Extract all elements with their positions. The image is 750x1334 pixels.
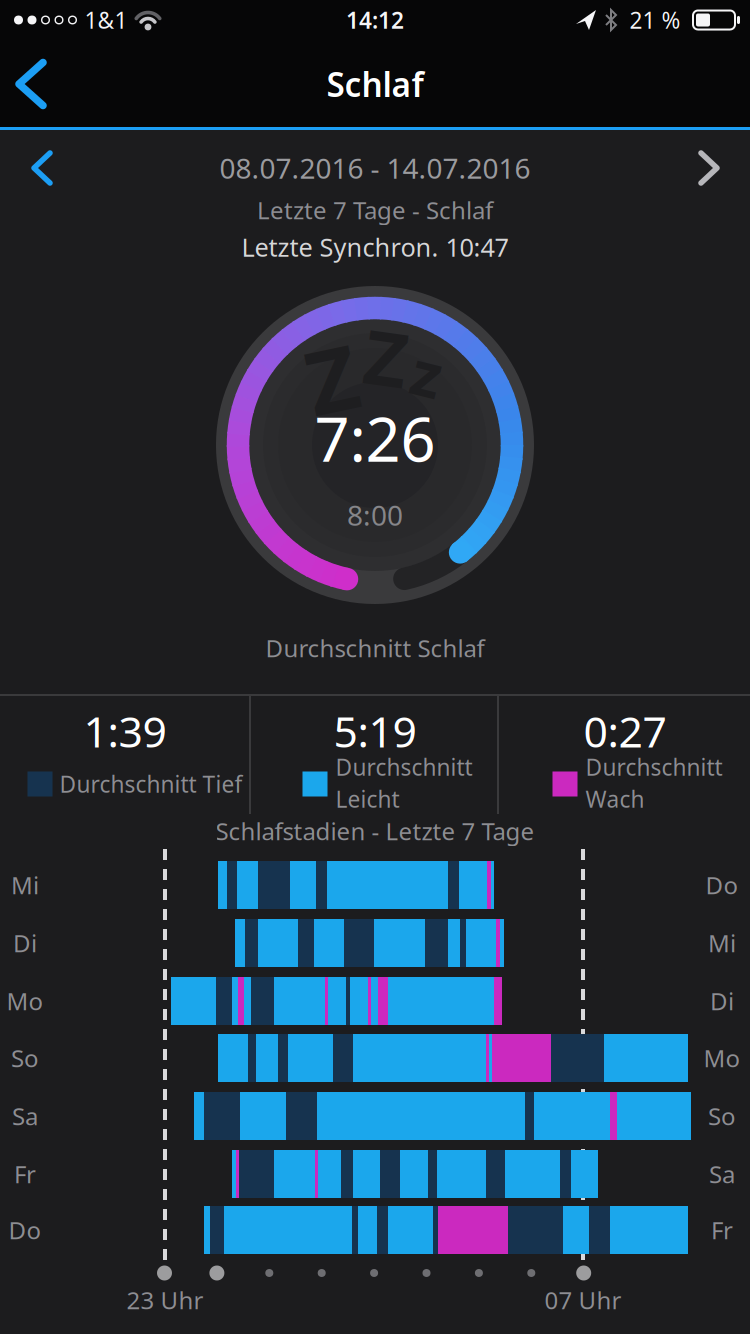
staticText: Fr [711,1214,733,1246]
staticText: Z [306,320,357,436]
staticText: 1:39 [83,703,166,759]
staticText: Durchschnitt [335,752,472,782]
staticText: Mo [703,1042,740,1074]
staticText: Wach [585,784,644,814]
staticText: Schlafstadien - Letzte 7 Tage [215,815,534,847]
staticText: 1&1 [84,5,127,35]
staticText: Mo [6,985,43,1017]
staticText: Schlaf [326,62,423,106]
staticText: Durchschnitt [585,752,722,782]
staticText: 23 Uhr [126,1284,203,1316]
staticText: Di [13,927,37,959]
button[interactable]: Back [0,40,71,127]
staticText: 21 % [629,5,680,35]
staticText: 8:00 [347,496,403,534]
staticText: Do [8,1214,41,1246]
staticText: 08.07.2016 - 14.07.2016 [219,149,530,187]
staticText: So [708,1100,736,1132]
staticText: Letzte 7 Tage - Schlaf [257,194,493,226]
staticText: 07 Uhr [544,1284,621,1316]
staticText: Durchschnitt Tief [59,769,242,799]
staticText: Leicht [335,784,399,814]
staticText: Di [710,985,734,1017]
staticText: Do [705,869,738,901]
staticText: Mi [11,869,39,901]
staticText: 0:27 [583,703,666,759]
staticText: Z [364,307,407,407]
staticText: z [412,332,442,414]
staticText: Sa [12,1100,38,1132]
staticText: Durchschnitt Schlaf [265,632,484,664]
staticText: So [11,1042,39,1074]
staticText: Sa [709,1158,735,1190]
staticText: Mi [708,927,736,959]
button[interactable]: Next period [674,138,744,198]
staticText: 7:26 [314,397,435,479]
staticText: Letzte Synchron. 10:47 [241,230,508,264]
staticText: Fr [14,1158,36,1190]
staticText: 14:12 [346,5,404,35]
button[interactable]: Previous period [7,138,77,198]
staticText: 5:19 [333,703,416,759]
